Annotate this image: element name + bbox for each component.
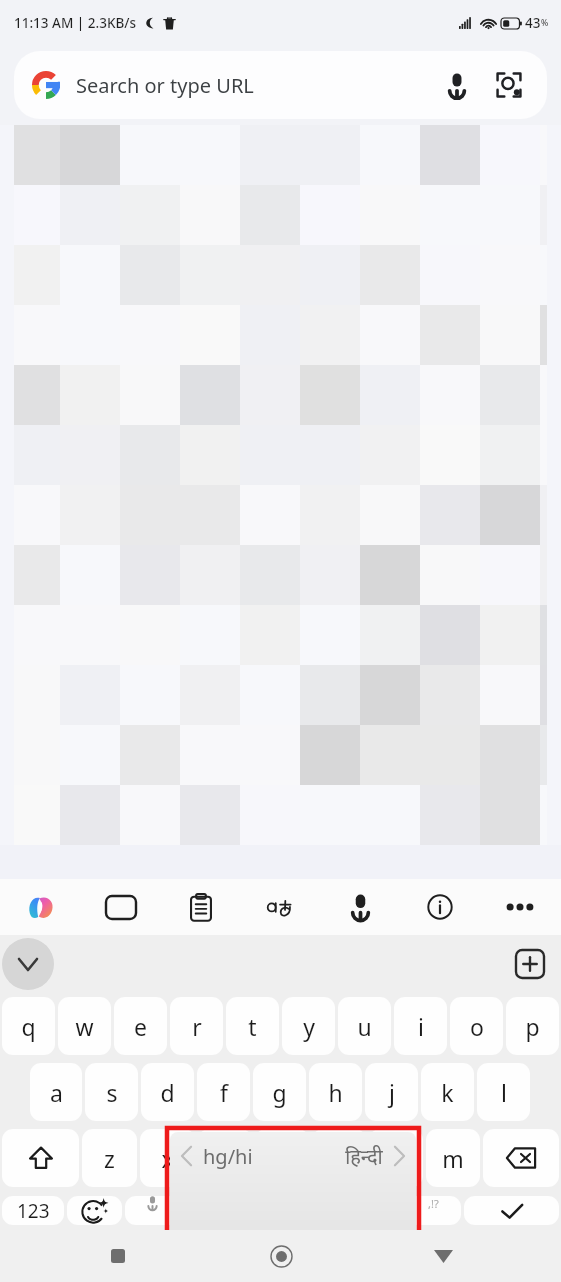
- staticText: 43: [525, 14, 541, 32]
- button[interactable]: Clipboard: [170, 879, 232, 935]
- button[interactable]: Back: [398, 1230, 488, 1282]
- button[interactable]: m: [426, 1129, 480, 1187]
- staticText: l: [501, 1077, 507, 1108]
- button[interactable]: Voice or comma: [125, 1196, 180, 1225]
- button[interactable]: Shift: [2, 1129, 79, 1187]
- staticText: 123: [17, 1198, 50, 1224]
- staticText: q: [21, 1011, 36, 1042]
- button[interactable]: f: [197, 1063, 250, 1121]
- staticText: %: [541, 17, 549, 29]
- button[interactable]: b: [312, 1129, 366, 1187]
- button[interactable]: Numbers: [2, 1196, 64, 1225]
- button[interactable]: Search or type URL: [14, 51, 547, 119]
- button[interactable]: g: [253, 1063, 306, 1121]
- button[interactable]: hg/hi: [170, 1132, 416, 1262]
- staticText: j: [389, 1077, 395, 1108]
- button[interactable]: t: [226, 997, 279, 1055]
- button[interactable]: e: [114, 997, 167, 1055]
- button[interactable]: r: [170, 997, 223, 1055]
- button[interactable]: Recent apps: [73, 1230, 163, 1282]
- button[interactable]: Google Lens: [489, 65, 529, 105]
- staticText: t: [248, 1011, 257, 1042]
- button[interactable]: Collapse toolbar: [2, 938, 54, 990]
- staticText: hg/hi: [203, 1143, 253, 1170]
- button[interactable]: u: [338, 997, 391, 1055]
- button[interactable]: y: [282, 997, 335, 1055]
- button[interactable]: j: [365, 1063, 418, 1121]
- button[interactable]: s: [85, 1063, 138, 1121]
- button[interactable]: p: [506, 997, 559, 1055]
- staticText: n: [389, 1143, 404, 1174]
- button[interactable]: n: [369, 1129, 423, 1187]
- staticText: f: [220, 1077, 228, 1108]
- staticText: z: [104, 1143, 115, 1174]
- staticText: a: [50, 1077, 63, 1108]
- button[interactable]: x: [140, 1129, 195, 1187]
- button[interactable]: o: [450, 997, 503, 1055]
- button[interactable]: c: [198, 1129, 252, 1187]
- staticText: Search or type URL: [76, 72, 437, 99]
- staticText: x: [161, 1143, 174, 1174]
- button[interactable]: Copilot: [10, 879, 72, 935]
- button[interactable]: Backspace: [483, 1129, 559, 1187]
- staticText: b: [332, 1143, 347, 1174]
- staticText: 11:13 AM | 2.3KB/s: [14, 14, 136, 32]
- staticText: u: [357, 1011, 372, 1042]
- button[interactable]: Period: [406, 1196, 461, 1225]
- staticText: w: [75, 1011, 94, 1042]
- staticText: h: [328, 1077, 343, 1108]
- staticText: ,!?: [428, 1196, 439, 1211]
- staticText: y: [303, 1011, 315, 1042]
- button[interactable]: Add: [513, 947, 547, 981]
- staticText: e: [134, 1011, 147, 1042]
- button[interactable]: v: [255, 1129, 309, 1187]
- button[interactable]: Voice search: [437, 65, 477, 105]
- button[interactable]: Translate: [250, 879, 312, 935]
- button[interactable]: GIF: [90, 879, 152, 935]
- staticText: i: [418, 1011, 424, 1042]
- button[interactable]: Voice input: [329, 879, 391, 935]
- staticText: हिन्दी: [345, 1143, 383, 1170]
- button[interactable]: Emoji: [67, 1196, 122, 1225]
- button[interactable]: More options: [489, 879, 551, 935]
- staticText: s: [106, 1077, 118, 1108]
- staticText: g: [272, 1077, 287, 1108]
- staticText: r: [192, 1011, 202, 1042]
- button[interactable]: i: [394, 997, 447, 1055]
- staticText: m: [442, 1143, 464, 1174]
- button[interactable]: a: [30, 1063, 82, 1121]
- button[interactable]: Info: [409, 879, 471, 935]
- button[interactable]: Enter: [464, 1196, 559, 1225]
- button[interactable]: Home: [236, 1230, 326, 1282]
- button[interactable]: q: [2, 997, 55, 1055]
- staticText: p: [525, 1011, 540, 1042]
- button[interactable]: d: [141, 1063, 194, 1121]
- button[interactable]: k: [421, 1063, 474, 1121]
- button[interactable]: w: [58, 997, 111, 1055]
- button[interactable]: z: [82, 1129, 137, 1187]
- staticText: d: [160, 1077, 175, 1108]
- staticText: k: [441, 1077, 454, 1108]
- button[interactable]: h: [309, 1063, 362, 1121]
- button[interactable]: l: [477, 1063, 530, 1121]
- staticText: c: [219, 1143, 231, 1174]
- staticText: o: [470, 1011, 484, 1042]
